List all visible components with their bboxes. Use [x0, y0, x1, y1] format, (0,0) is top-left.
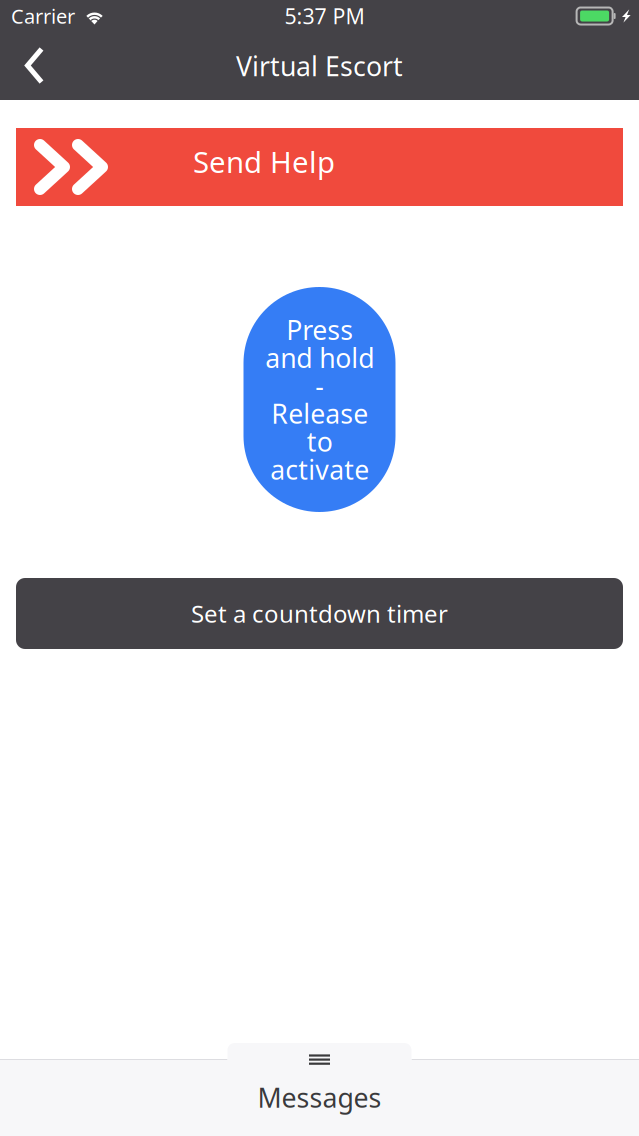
staticText: Messages — [257, 1080, 381, 1115]
staticText: Carrier — [11, 3, 75, 29]
button[interactable]: Send Help — [16, 128, 623, 206]
staticText: Set a countdown timer — [191, 598, 448, 629]
staticText: 5:37 PM — [284, 2, 364, 30]
button[interactable]: Press and hold - Release to activate — [243, 287, 395, 512]
staticText: Virtual Escort — [236, 48, 403, 84]
button[interactable]: Messages — [0, 1043, 639, 1136]
staticText: Press and hold - Release to activate — [265, 312, 374, 487]
button[interactable]: Back — [0, 40, 69, 100]
staticText: Send Help — [193, 142, 335, 181]
button[interactable]: Set a countdown timer — [16, 578, 623, 649]
